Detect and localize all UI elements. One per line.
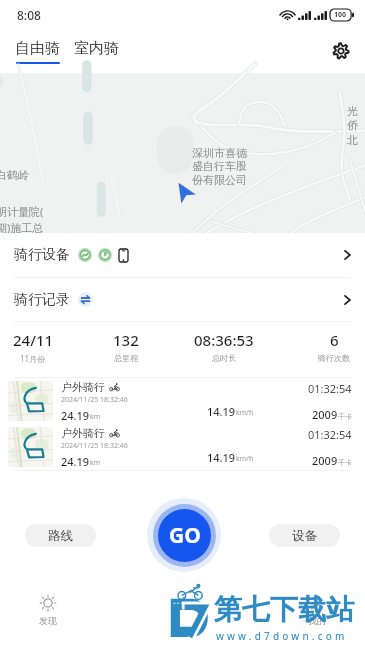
staticText: 发现 bbox=[39, 615, 57, 626]
staticText: 24.19 bbox=[61, 408, 90, 423]
staticText: 骑行记录 bbox=[14, 291, 70, 309]
staticText: 骑行 bbox=[173, 615, 191, 626]
staticText: 2024/11/25 18:32:46 bbox=[61, 441, 128, 451]
staticText: 2024/11/25 18:32:46 bbox=[61, 395, 128, 405]
staticText: 01:32:54 bbox=[308, 381, 352, 396]
staticText: 路线 bbox=[48, 528, 73, 544]
staticText: 骑行设备 bbox=[14, 246, 70, 264]
staticText: 光 侨 北 bbox=[347, 104, 358, 147]
button[interactable]: 骑行 bbox=[156, 588, 208, 650]
staticText: 白鹤岭 bbox=[0, 168, 29, 182]
staticText: 6 bbox=[330, 330, 339, 350]
staticText: 总时长 bbox=[212, 353, 236, 363]
staticText: 08:36:53 bbox=[194, 330, 254, 350]
button[interactable]: 设备 bbox=[269, 524, 340, 547]
staticText: 24/11 bbox=[13, 330, 54, 350]
staticText: 总里程 bbox=[114, 353, 138, 363]
staticText: 自由骑 bbox=[15, 39, 60, 58]
staticText: 01:32:54 bbox=[308, 427, 352, 442]
button[interactable]: GO bbox=[147, 498, 221, 572]
staticText: 室内骑 bbox=[74, 39, 119, 58]
staticText: 明计量院( 期)施工总 bbox=[0, 204, 44, 235]
staticText: km/h bbox=[236, 408, 254, 418]
staticText: 100 bbox=[334, 10, 347, 20]
staticText: 8:08 bbox=[17, 7, 41, 23]
button[interactable]: 路线 bbox=[25, 524, 96, 547]
button[interactable]: Settings bbox=[325, 35, 357, 67]
staticText: km/h bbox=[236, 454, 254, 464]
staticText: 户外骑行 bbox=[61, 380, 105, 394]
staticText: 我的 bbox=[308, 615, 326, 626]
button[interactable]: 室内骑 bbox=[72, 35, 121, 68]
staticText: 11月份 bbox=[20, 353, 46, 364]
staticText: 14.19 bbox=[207, 404, 236, 419]
button[interactable]: 户外骑行 bbox=[0, 424, 365, 470]
staticText: 户外骑行 bbox=[61, 426, 105, 440]
staticText: km bbox=[90, 412, 101, 422]
staticText: 设备 bbox=[292, 528, 317, 544]
button[interactable]: 自由骑 bbox=[13, 35, 62, 68]
staticText: 骑行次数 bbox=[318, 353, 350, 363]
staticText: 14.19 bbox=[207, 450, 236, 465]
button[interactable]: 骑行记录 bbox=[0, 278, 365, 321]
staticText: www.d7down.com bbox=[216, 629, 348, 643]
button[interactable]: 我的 bbox=[291, 588, 343, 650]
staticText: 2009 bbox=[312, 453, 338, 468]
staticText: 千卡 bbox=[338, 412, 352, 421]
staticText: 深圳市喜德 盛自行车股 份有限公司 bbox=[192, 146, 247, 188]
button[interactable]: 骑行设备 bbox=[0, 233, 365, 277]
staticText: 24.19 bbox=[61, 454, 90, 469]
button[interactable]: 发现 bbox=[22, 588, 74, 650]
staticText: 132 bbox=[113, 330, 139, 350]
staticText: 2009 bbox=[312, 407, 338, 422]
staticText: GO bbox=[169, 521, 201, 550]
button[interactable]: 户外骑行 bbox=[0, 378, 365, 424]
staticText: 千卡 bbox=[338, 458, 352, 467]
staticText: km bbox=[90, 458, 101, 468]
staticText: 第七下载站 bbox=[214, 592, 354, 627]
